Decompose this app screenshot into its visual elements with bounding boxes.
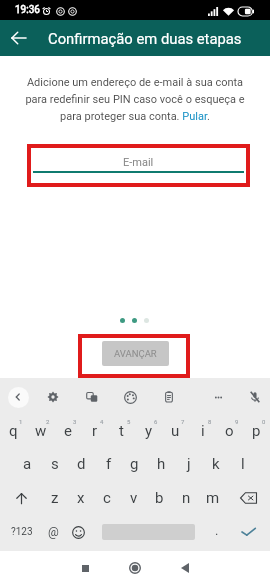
button[interactable]: Recents — [68, 551, 102, 585]
staticText: 7 — [181, 418, 185, 425]
button[interactable]: d — [68, 447, 95, 481]
staticText: 0 — [262, 418, 266, 425]
staticText: Confirmação em duas etapas — [48, 30, 242, 47]
button[interactable]: s — [41, 447, 68, 481]
staticText: b — [155, 489, 164, 507]
staticText: z — [51, 489, 59, 507]
button[interactable]: f — [95, 447, 122, 481]
button[interactable]: v — [120, 481, 147, 515]
staticText: l — [241, 455, 245, 473]
button[interactable]: x — [67, 481, 94, 515]
staticText: y — [145, 422, 153, 440]
staticText: g — [130, 455, 139, 473]
button[interactable]: u — [162, 413, 189, 447]
button[interactable]: w — [27, 413, 54, 447]
button[interactable]: Back — [0, 20, 38, 56]
button[interactable]: y — [135, 413, 162, 447]
staticText: w — [35, 422, 47, 440]
staticText: h — [157, 455, 166, 473]
button[interactable]: b — [146, 481, 173, 515]
button[interactable]: p — [243, 413, 270, 447]
button[interactable]: Settings — [39, 383, 67, 411]
button[interactable]: . — [204, 515, 230, 549]
staticText: 6 — [154, 418, 158, 425]
button[interactable]: n — [173, 481, 200, 515]
button[interactable]: j — [175, 447, 202, 481]
staticText: . — [215, 523, 219, 538]
staticText: 19:36 — [15, 4, 40, 16]
staticText: j — [187, 455, 191, 473]
staticText: e — [64, 422, 72, 440]
button[interactable]: @ — [40, 515, 67, 549]
button[interactable]: i — [189, 413, 216, 447]
staticText: f — [106, 455, 112, 473]
button[interactable]: o — [216, 413, 243, 447]
button[interactable]: Themes — [116, 383, 144, 411]
staticText: E-mail — [123, 156, 154, 169]
staticText: ?123 — [11, 526, 33, 538]
button[interactable]: AVANÇAR — [102, 341, 169, 366]
button[interactable]: Emoji — [65, 515, 92, 549]
staticText: 1 — [19, 418, 23, 425]
staticText: 5 — [127, 418, 131, 425]
button[interactable]: k — [202, 447, 229, 481]
staticText: t — [119, 422, 124, 440]
staticText: r — [92, 422, 98, 440]
button[interactable]: Backspace — [226, 481, 270, 515]
staticText: AVANÇAR — [114, 348, 157, 359]
button[interactable]: q — [0, 413, 27, 447]
button[interactable]: r — [81, 413, 108, 447]
staticText: v — [130, 489, 138, 507]
button[interactable]: ?123 — [4, 515, 40, 549]
staticText: n — [182, 489, 191, 507]
staticText: s — [51, 455, 59, 473]
staticText: c — [103, 489, 111, 507]
staticText: 2 — [46, 418, 50, 425]
button[interactable]: Shift — [0, 481, 42, 515]
button[interactable]: c — [93, 481, 120, 515]
staticText: k — [212, 455, 220, 473]
staticText: 4 — [100, 418, 104, 425]
staticText: @ — [48, 525, 59, 539]
staticText: 8 — [208, 418, 212, 425]
staticText: p — [252, 422, 261, 440]
button[interactable]: Enter — [226, 515, 270, 549]
button[interactable]: E-mail — [34, 151, 243, 180]
staticText: u — [171, 422, 180, 440]
button[interactable]: More options — [204, 383, 232, 411]
button[interactable]: Translate — [78, 383, 106, 411]
button[interactable]: Home — [118, 551, 152, 585]
button[interactable]: t — [108, 413, 135, 447]
staticText: q — [9, 422, 18, 440]
button[interactable]: a — [14, 447, 41, 481]
button[interactable]: l — [229, 447, 256, 481]
button[interactable]: e — [54, 413, 81, 447]
staticText: i — [201, 422, 205, 440]
staticText: m — [206, 489, 220, 507]
staticText: Adicione um endereço de e-mail à sua con… — [14, 76, 256, 123]
staticText: 9 — [235, 418, 239, 425]
button[interactable]: Expand toolbar — [4, 383, 32, 411]
staticText: x — [77, 489, 85, 507]
button[interactable]: z — [41, 481, 68, 515]
button[interactable]: Voice input disabled — [241, 383, 269, 411]
staticText: d — [77, 455, 86, 473]
staticText: a — [23, 455, 32, 473]
button[interactable]: g — [121, 447, 148, 481]
staticText: o — [225, 422, 234, 440]
button[interactable]: Clipboard — [155, 383, 183, 411]
button[interactable]: h — [148, 447, 175, 481]
staticText: 3 — [73, 418, 77, 425]
button[interactable]: Back — [168, 551, 202, 585]
button[interactable]: m — [199, 481, 226, 515]
